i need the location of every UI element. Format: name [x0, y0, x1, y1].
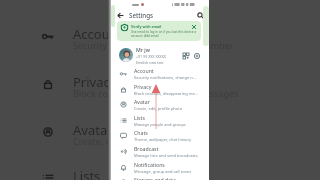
staticText: Create, edit, profile photo — [73, 135, 182, 147]
button[interactable]: Status — [192, 51, 201, 60]
button[interactable]: Avatar — [111, 97, 209, 112]
button[interactable]: Privacy — [111, 82, 209, 97]
staticText: Message, group and call tones — [134, 169, 192, 174]
staticText: Avatar — [134, 98, 150, 105]
button[interactable]: Verify with email — [117, 21, 201, 41]
button[interactable]: Broadcast — [111, 144, 209, 159]
button[interactable]: Mr jw — [111, 46, 209, 64]
staticText: Block contacts, disappearing messages — [134, 91, 198, 96]
staticText: +91 99 XXX XXXXX — [136, 54, 166, 59]
button[interactable]: Dismiss — [191, 24, 196, 29]
staticText: Use email to log in on if you lost this … — [131, 30, 196, 38]
staticText: Lists — [134, 114, 145, 121]
button[interactable]: Chats — [111, 128, 209, 143]
staticText: Mr jw — [136, 46, 150, 53]
staticText: Manage people and groups — [134, 122, 186, 127]
staticText: Create, edit, profile photo — [134, 106, 183, 111]
button[interactable]: Lists — [111, 113, 209, 128]
staticText: Avatar — [73, 121, 113, 139]
button[interactable]: Storage and data — [111, 175, 209, 180]
staticText: Manage lists and send broadcasts — [134, 153, 198, 158]
staticText: Verify with email — [131, 24, 162, 29]
staticText: English new text — [136, 60, 164, 64]
staticText: Lists — [73, 167, 101, 180]
staticText: Theme, wallpaper, chat history — [134, 137, 192, 142]
staticText: Broadcast — [134, 145, 159, 152]
staticText: Notifications — [134, 161, 165, 168]
staticText: Privacy — [134, 83, 152, 90]
button[interactable]: Notifications — [111, 160, 209, 175]
button[interactable]: Back — [116, 11, 125, 20]
staticText: Security notifications, change number — [73, 39, 234, 51]
button[interactable]: QR code — [181, 51, 190, 60]
staticText: Chats — [134, 129, 148, 136]
staticText: Block contacts, disappearing messages — [73, 87, 239, 99]
button[interactable]: Search — [196, 11, 205, 20]
button[interactable]: Account — [111, 66, 209, 81]
staticText: Security notifications, change number — [134, 75, 198, 80]
staticText: Account — [134, 67, 154, 74]
staticText: Privacy — [73, 73, 117, 91]
staticText: Account — [73, 25, 123, 43]
staticText: Settings — [129, 11, 154, 19]
staticText: Storage and data — [134, 176, 176, 180]
